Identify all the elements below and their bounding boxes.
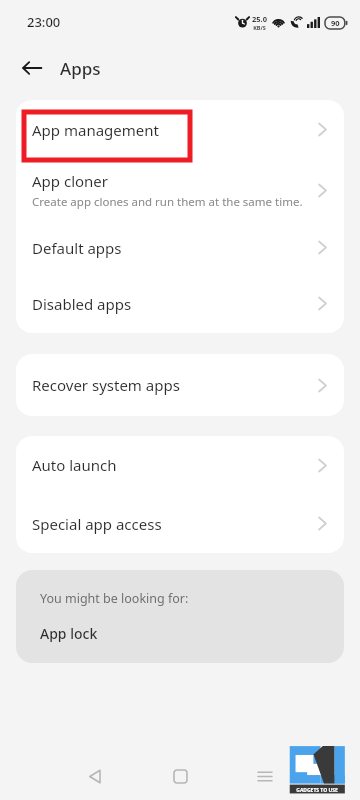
staticText: Apps (60, 57, 101, 80)
button[interactable]: Special app access (16, 494, 344, 553)
button[interactable]: App cloner (16, 159, 344, 221)
staticText: App lock (40, 624, 98, 643)
button[interactable]: Disabled apps (16, 274, 344, 333)
button[interactable]: Recent apps (244, 755, 286, 797)
staticText: Special app access (32, 514, 162, 534)
staticText: Disabled apps (32, 294, 132, 314)
staticText: GADGETS TO USE (296, 787, 338, 794)
staticText: Create app clones and run them at the sa… (32, 194, 303, 210)
button[interactable]: App lock (40, 624, 98, 643)
staticText: You might be looking for: (40, 590, 189, 607)
button[interactable]: Home (159, 755, 201, 797)
staticText: 25.0 (252, 14, 267, 24)
staticText: Recover system apps (32, 375, 180, 395)
button[interactable]: Default apps (16, 221, 344, 274)
staticText: App cloner (32, 171, 109, 191)
button[interactable]: App management (16, 100, 344, 159)
staticText: Default apps (32, 238, 122, 258)
button[interactable]: Recover system apps (16, 354, 344, 416)
button[interactable]: Auto launch (16, 436, 344, 494)
staticText: 90 (331, 18, 340, 28)
button[interactable]: Back (74, 755, 116, 797)
button[interactable]: Back (16, 52, 48, 84)
staticText: 23:00 (27, 13, 61, 31)
staticText: KB/S (253, 24, 266, 31)
staticText: App management (32, 120, 159, 140)
staticText: Auto launch (32, 455, 117, 475)
